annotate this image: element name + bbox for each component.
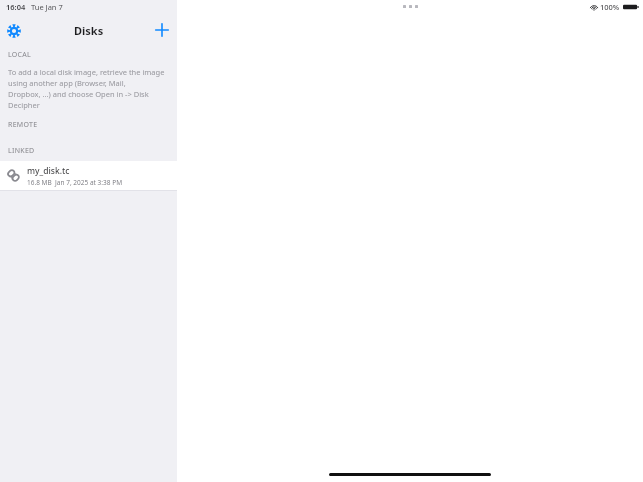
staticText: 100% [600,2,620,12]
staticText: 16.8 MB Jan 7, 2025 at 3:38 PM [27,178,123,187]
button[interactable]: Multitasking controls [401,3,420,10]
staticText: LINKED [8,146,35,156]
staticText: LOCAL [8,50,32,60]
staticText: my_disk.tc [27,165,70,177]
staticText: 16:04 [6,2,26,12]
button[interactable]: my_disk.tc [0,161,177,190]
staticText: To add a local disk image, retrieve the … [8,67,169,110]
staticText: REMOTE [8,120,38,130]
staticText: Disks [74,23,104,38]
button[interactable]: Settings [3,20,24,41]
button[interactable]: Add disk [151,19,173,41]
staticText: Tue Jan 7 [31,2,63,12]
